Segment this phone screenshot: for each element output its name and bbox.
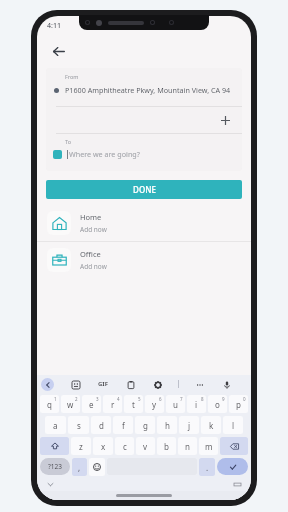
staticText: , xyxy=(78,462,81,473)
button[interactable]: l xyxy=(223,416,243,434)
button[interactable]: Stickers xyxy=(69,378,82,391)
button[interactable]: c xyxy=(115,437,134,455)
staticText: 6 xyxy=(159,396,162,402)
staticText: m xyxy=(205,441,213,452)
staticText: 2 xyxy=(75,396,78,402)
staticText: 8 xyxy=(201,396,204,402)
staticText: Where we are going? xyxy=(69,149,140,159)
staticText: g xyxy=(143,420,148,431)
staticText: From xyxy=(65,73,79,80)
button[interactable]: Voice input xyxy=(220,378,233,391)
staticText: x xyxy=(101,441,106,452)
button[interactable]: g xyxy=(135,416,155,434)
button[interactable]: More xyxy=(193,378,206,391)
button[interactable]: GIF xyxy=(96,378,110,390)
button[interactable]: Hide keyboard xyxy=(47,481,54,488)
button[interactable]: f xyxy=(113,416,133,434)
staticText: 5 xyxy=(138,396,141,402)
staticText: a xyxy=(53,420,58,431)
staticText: Home xyxy=(80,212,102,222)
button[interactable]: Shift xyxy=(40,437,69,455)
button[interactable]: Emoji xyxy=(89,458,105,476)
button[interactable]: z xyxy=(71,437,91,455)
staticText: e xyxy=(89,399,94,410)
button[interactable]: Add stop xyxy=(46,107,242,133)
staticText: n xyxy=(185,441,190,452)
staticText: Add now xyxy=(80,225,107,234)
staticText: P1600 Amphitheatre Pkwy, Mountain View, … xyxy=(65,85,231,95)
staticText: s xyxy=(77,420,81,431)
staticText: d xyxy=(99,420,104,431)
staticText: 4 xyxy=(117,396,120,402)
staticText: 9 xyxy=(222,396,225,402)
button[interactable]: p xyxy=(229,395,248,413)
staticText: 1 xyxy=(54,396,57,402)
button[interactable]: Enter xyxy=(217,458,248,475)
staticText: GIF xyxy=(98,380,108,388)
staticText: h xyxy=(165,420,170,431)
button[interactable]: Home xyxy=(37,205,251,241)
button[interactable]: , xyxy=(72,458,87,476)
staticText: Office xyxy=(80,249,101,259)
staticText: ?123 xyxy=(48,462,62,471)
button[interactable]: Clipboard xyxy=(124,378,137,391)
staticText: DONE xyxy=(133,184,156,195)
button[interactable]: u xyxy=(166,395,185,413)
staticText: q xyxy=(47,399,52,410)
button[interactable]: h xyxy=(157,416,177,434)
button[interactable]: . xyxy=(199,458,215,476)
staticText: o xyxy=(215,399,220,410)
button[interactable]: y xyxy=(145,395,164,413)
button[interactable]: Backspace xyxy=(220,437,248,455)
button[interactable]: q xyxy=(40,395,59,413)
button[interactable]: k xyxy=(201,416,221,434)
staticText: c xyxy=(123,441,127,452)
button[interactable]: Previous xyxy=(41,378,54,391)
staticText: . xyxy=(206,462,209,473)
button[interactable]: Switch keyboard xyxy=(234,481,241,488)
button[interactable]: ?123 xyxy=(40,458,70,475)
staticText: b xyxy=(164,441,169,452)
staticText: v xyxy=(143,441,148,452)
staticText: f xyxy=(122,420,125,431)
staticText: w xyxy=(67,399,74,410)
button[interactable]: a xyxy=(45,416,66,434)
staticText: y xyxy=(152,399,157,410)
button[interactable]: m xyxy=(199,437,218,455)
staticText: u xyxy=(173,399,178,410)
button[interactable]: v xyxy=(136,437,155,455)
staticText: i xyxy=(195,399,198,410)
staticText: t xyxy=(132,399,135,410)
button[interactable]: Back xyxy=(45,38,71,64)
button[interactable]: j xyxy=(179,416,199,434)
staticText: Add now xyxy=(80,262,107,271)
staticText: 4:11 xyxy=(47,21,61,31)
button[interactable]: To xyxy=(46,134,242,171)
button[interactable]: e xyxy=(82,395,101,413)
staticText: l xyxy=(232,420,235,431)
button[interactable]: Office xyxy=(37,242,251,278)
staticText: 0 xyxy=(243,396,246,402)
button[interactable]: DONE xyxy=(46,180,242,199)
button[interactable]: o xyxy=(208,395,227,413)
staticText: r xyxy=(111,399,115,410)
staticText: k xyxy=(209,420,214,431)
staticText: 3 xyxy=(96,396,99,402)
staticText: j xyxy=(188,420,191,431)
staticText: z xyxy=(79,441,83,452)
button[interactable]: From xyxy=(46,68,242,106)
button[interactable]: d xyxy=(91,416,111,434)
button[interactable]: Settings xyxy=(151,378,164,391)
button[interactable]: s xyxy=(68,416,89,434)
button[interactable]: x xyxy=(93,437,113,455)
button[interactable]: n xyxy=(178,437,197,455)
staticText: 7 xyxy=(180,396,183,402)
button[interactable]: t xyxy=(124,395,143,413)
staticText: To xyxy=(65,138,72,145)
button[interactable]: b xyxy=(157,437,176,455)
button[interactable]: w xyxy=(61,395,80,413)
staticText: p xyxy=(236,399,241,410)
button[interactable]: r xyxy=(103,395,122,413)
button[interactable]: i xyxy=(187,395,206,413)
